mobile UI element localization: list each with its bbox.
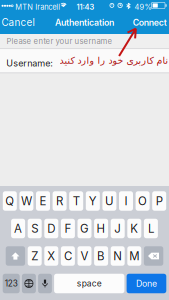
staticText: T (73, 194, 80, 208)
staticText: U (105, 194, 114, 208)
button[interactable]: E (36, 191, 50, 211)
button[interactable]: U (102, 191, 116, 211)
staticText: 123 (5, 278, 18, 288)
button[interactable]: L (144, 219, 158, 238)
button[interactable]: M (127, 246, 141, 266)
staticText: D (47, 222, 55, 235)
button[interactable]: G (77, 219, 91, 238)
button[interactable]: space (54, 274, 124, 293)
staticText: Cancel (1, 16, 34, 28)
staticText: V (80, 249, 88, 263)
staticText: 49% (134, 3, 151, 12)
button[interactable]: Shift (6, 246, 25, 266)
button[interactable]: N (111, 246, 125, 266)
staticText: K (130, 222, 138, 235)
button[interactable]: O (136, 191, 150, 211)
staticText: Username: (6, 58, 53, 69)
button[interactable]: B (94, 246, 108, 266)
staticText: Q (5, 194, 14, 208)
staticText: H (97, 222, 106, 235)
staticText: نام کاربری خود را وارد کنید (59, 55, 168, 66)
button[interactable]: D (44, 219, 58, 238)
button[interactable]: S (28, 219, 42, 238)
staticText: Please enter your username (6, 37, 112, 46)
staticText: MTN Irancell (15, 3, 60, 12)
staticText: G (80, 222, 89, 235)
staticText: E (39, 194, 46, 208)
button[interactable]: R (53, 191, 67, 211)
staticText: P (156, 194, 163, 208)
button[interactable]: T (69, 191, 83, 211)
button[interactable]: H (94, 219, 108, 238)
button[interactable]: X (44, 246, 58, 266)
staticText: Done (136, 278, 157, 289)
staticText: J (114, 222, 121, 235)
staticText: N (113, 249, 122, 263)
button[interactable]: Dictation (38, 274, 52, 293)
staticText: L (148, 222, 154, 235)
button[interactable]: Connect (127, 11, 169, 34)
staticText: R (56, 194, 63, 208)
button[interactable]: A (11, 219, 25, 238)
staticText: I (124, 194, 127, 208)
button[interactable]: W (19, 191, 33, 211)
button[interactable]: Y (86, 191, 100, 211)
button[interactable]: Next keyboard (22, 274, 36, 293)
staticText: C (64, 249, 72, 263)
staticText: 11:43 (76, 3, 94, 12)
staticText: space (77, 278, 102, 289)
staticText: F (64, 222, 71, 235)
button[interactable]: 123 (3, 274, 20, 293)
staticText: A (14, 222, 22, 235)
staticText: M (129, 249, 139, 263)
button[interactable]: Z (28, 246, 42, 266)
button[interactable]: Done (127, 274, 166, 293)
staticText: X (47, 249, 55, 263)
button[interactable]: F (61, 219, 75, 238)
button[interactable]: Cancel (0, 11, 40, 34)
button[interactable]: C (61, 246, 75, 266)
button[interactable]: Q (3, 191, 17, 211)
staticText: Authentication (55, 17, 114, 28)
button[interactable]: I (119, 191, 133, 211)
button[interactable]: Delete (144, 246, 163, 266)
staticText: S (31, 222, 38, 235)
button[interactable]: K (127, 219, 141, 238)
button[interactable]: J (111, 219, 125, 238)
staticText: W (21, 194, 32, 208)
staticText: B (97, 249, 105, 263)
button[interactable]: P (152, 191, 166, 211)
staticText: O (138, 194, 147, 208)
staticText: Connect (133, 17, 167, 28)
button[interactable]: V (77, 246, 91, 266)
staticText: Y (89, 194, 97, 208)
staticText: Z (31, 249, 38, 263)
